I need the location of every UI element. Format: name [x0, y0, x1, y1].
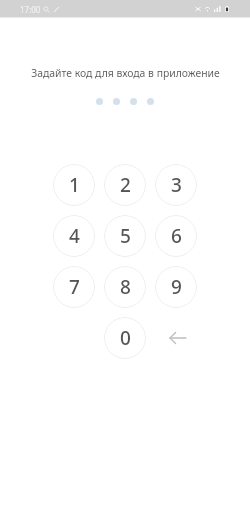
staticText: Задайте код для входа в приложение — [31, 66, 220, 80]
button[interactable]: 6 — [155, 215, 197, 257]
staticText: 7 — [69, 274, 80, 300]
staticText: 4 — [69, 223, 80, 249]
staticText: 17:00 — [20, 4, 41, 15]
button[interactable]: 9 — [155, 266, 197, 308]
button[interactable]: 2 — [104, 164, 146, 206]
button[interactable]: 4 — [53, 215, 95, 257]
button[interactable]: 1 — [53, 164, 95, 206]
staticText: 0 — [120, 325, 131, 351]
button[interactable]: 5 — [104, 215, 146, 257]
button[interactable]: Backspace — [155, 317, 197, 359]
staticText: 6 — [171, 223, 182, 249]
staticText: 2 — [120, 172, 131, 198]
button[interactable]: 3 — [155, 164, 197, 206]
staticText: 5 — [120, 223, 131, 249]
staticText: 8 — [120, 274, 131, 300]
button[interactable]: 0 — [104, 317, 146, 359]
staticText: 9 — [171, 274, 182, 300]
staticText: 1 — [69, 172, 80, 198]
button[interactable]: 7 — [53, 266, 95, 308]
staticText: 3 — [171, 172, 182, 198]
button[interactable]: 8 — [104, 266, 146, 308]
